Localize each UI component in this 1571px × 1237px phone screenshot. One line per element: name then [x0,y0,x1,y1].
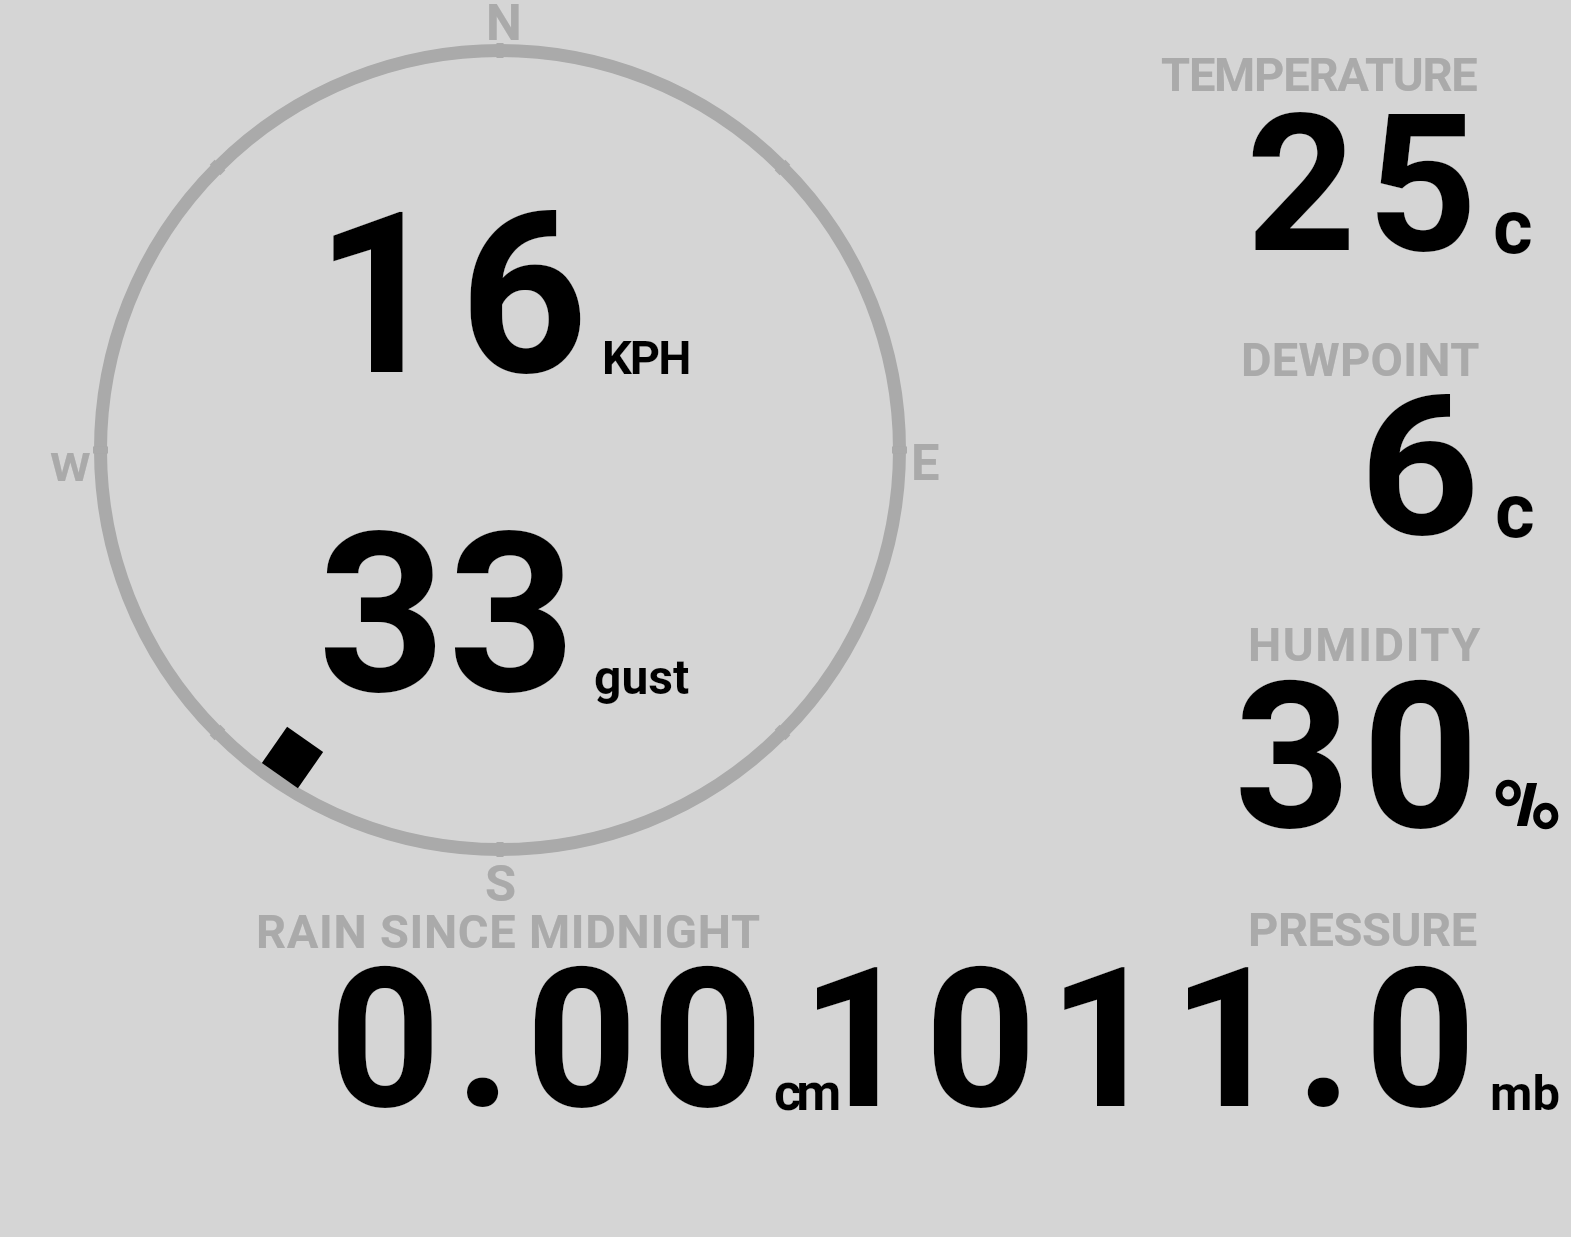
button[interactable]: Temperature 25 degrees C [1140,40,1560,265]
button[interactable]: Wind 16 KPH gusting 33, direction south-… [88,38,912,862]
staticText: 16 [315,164,605,427]
staticText: KPH [602,330,690,385]
staticText: N [486,0,522,52]
staticText: S [485,854,517,913]
staticText: W [50,446,91,491]
button[interactable]: Rain since midnight 0.00 cm [250,895,850,1120]
staticText: 30 [1234,638,1491,877]
staticText: 0.00 [329,925,778,1154]
staticText: PRESSURE [1248,902,1477,957]
staticText: E [911,433,940,492]
staticText: cm [774,1062,837,1123]
staticText: c [1493,182,1533,271]
staticText: 33 [318,484,578,745]
staticText: TEMPERATURE [1161,47,1477,102]
staticText: 25 [1246,72,1489,297]
button[interactable]: Dewpoint 6 degrees C [1140,325,1560,550]
staticText: 6 [1359,354,1481,581]
button[interactable]: Pressure 1011.0 millibars [850,895,1560,1120]
staticText: c [1495,466,1535,555]
staticText: mb [1490,1065,1561,1122]
button[interactable]: Humidity 30 percent [1140,610,1560,835]
staticText: DEWPOINT [1241,332,1480,387]
staticText: RAIN SINCE MIDNIGHT [256,904,761,959]
staticText: 1011.0 [801,925,1488,1154]
staticText: HUMIDITY [1248,617,1483,672]
staticText: gust [594,649,690,705]
